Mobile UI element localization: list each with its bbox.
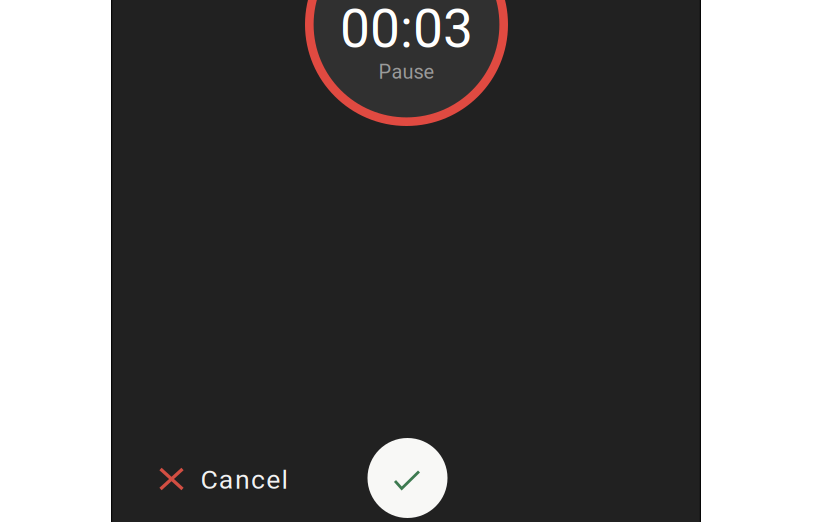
staticText: c [251,464,265,495]
button[interactable]: C [161,459,301,499]
button[interactable]: Confirm [367,438,447,518]
staticText: e [266,464,280,495]
staticText: n [235,464,250,495]
staticText: Pause [378,60,434,84]
staticText: C [200,464,217,495]
staticText: l [281,464,287,495]
staticText: 00:03 [340,0,473,60]
staticText: a [219,464,234,495]
button[interactable]: Pause timer [305,0,508,126]
